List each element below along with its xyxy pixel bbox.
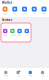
staticText: Health	[3, 34, 7, 36]
button[interactable]: Card	[20, 7, 29, 15]
staticText: Card	[22, 13, 26, 15]
staticText: Home	[4, 75, 8, 77]
staticText: More	[42, 13, 46, 15]
button[interactable]: Trip	[23, 29, 30, 36]
staticText: Pay	[13, 13, 16, 15]
staticText: Services	[2, 18, 12, 22]
button[interactable]: Bank	[16, 29, 23, 36]
button[interactable]: Pay	[10, 7, 20, 15]
button[interactable]: Chat	[12, 70, 24, 77]
staticText: Pay	[29, 75, 32, 77]
button[interactable]: Me	[37, 70, 49, 77]
button[interactable]: Travel	[9, 29, 16, 36]
staticText: Bill	[34, 13, 35, 15]
staticText: Travel	[10, 34, 15, 36]
staticText: Trip	[25, 34, 28, 36]
staticText: Bank	[18, 34, 22, 36]
staticText: Chat	[17, 75, 20, 77]
button[interactable]: Pay	[24, 70, 37, 77]
staticText: Wallet	[2, 1, 12, 4]
button[interactable]: Health	[2, 29, 9, 36]
staticText: Me	[42, 75, 44, 77]
button[interactable]: Home	[0, 70, 12, 77]
button[interactable]: More	[39, 7, 49, 15]
staticText: Scan	[3, 13, 7, 15]
button[interactable]: Bill	[29, 7, 39, 15]
button[interactable]: Scan	[0, 7, 10, 15]
